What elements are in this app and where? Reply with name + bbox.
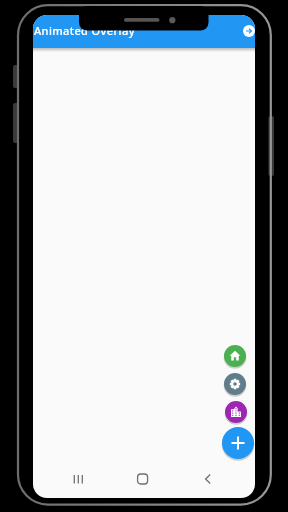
staticText: Animated Overlay	[34, 23, 135, 38]
button[interactable]	[224, 373, 246, 395]
button[interactable]	[243, 25, 255, 37]
button[interactable]	[224, 345, 246, 367]
button[interactable]	[222, 427, 254, 459]
button[interactable]	[225, 401, 247, 423]
